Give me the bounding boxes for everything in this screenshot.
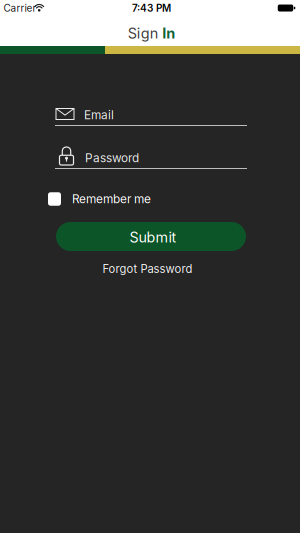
button[interactable]: Remember me (48, 192, 151, 206)
staticText: Submit (129, 229, 176, 246)
staticText: Forgot Password (102, 262, 192, 276)
staticText: 7:43 PM (132, 2, 171, 14)
button[interactable]: Password (55, 147, 247, 169)
staticText: Sign (128, 24, 159, 42)
staticText: Password (85, 151, 139, 165)
staticText: Email (84, 108, 114, 122)
staticText: Carrier (3, 2, 36, 14)
staticText: In (162, 24, 175, 42)
staticText: Remember me (72, 192, 151, 206)
button[interactable]: Submit (56, 222, 246, 251)
button[interactable]: Email (55, 108, 247, 126)
button[interactable]: Forgot Password (102, 262, 192, 276)
